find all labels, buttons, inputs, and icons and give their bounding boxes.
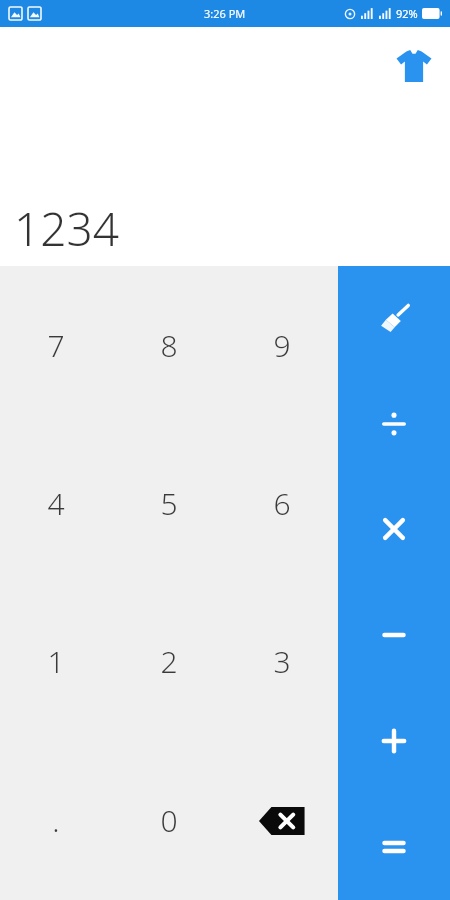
button[interactable]: 9 [225,266,338,424]
staticText: 1234 [14,197,120,260]
button[interactable]: 4 [0,424,112,582]
staticText: 8 [160,325,178,366]
staticText: 6 [273,483,291,524]
staticText: 4 [47,483,65,524]
button[interactable]: 2 [112,582,225,741]
staticText: 0 [160,800,178,841]
staticText: 5 [160,483,178,524]
button[interactable]: 0 [112,741,225,900]
staticText: 9 [273,325,291,366]
button[interactable]: 5 [112,424,225,582]
button[interactable]: 7 [0,266,112,424]
button[interactable]: Divide [338,371,450,476]
button[interactable]: 8 [112,266,225,424]
button[interactable]: 6 [225,424,338,582]
button[interactable]: Add [338,688,450,794]
staticText: 3 [273,641,291,682]
staticText: 2 [160,641,178,682]
button[interactable]: Equals [338,794,450,900]
staticText: 92% [396,6,418,21]
button[interactable]: 1 [0,582,112,741]
button[interactable]: 3 [225,582,338,741]
button[interactable]: Change theme [390,42,438,90]
button[interactable]: Subtract [338,582,450,688]
button[interactable]: Backspace [225,741,338,900]
button[interactable]: Multiply [338,476,450,582]
staticText: 3:26 PM [204,6,246,21]
staticText: 1 [47,641,65,682]
staticText: 7 [47,325,65,366]
button[interactable]: Clear [338,266,450,371]
staticText: . [52,800,60,841]
